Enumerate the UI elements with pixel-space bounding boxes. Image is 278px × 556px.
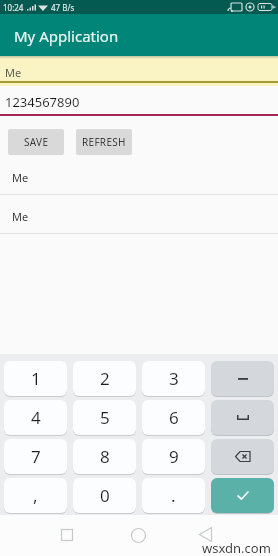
button[interactable]: ,	[4, 478, 67, 513]
staticText: 7	[31, 445, 41, 468]
staticText: wsxdn.com	[202, 539, 271, 556]
staticText: 10:24	[3, 2, 24, 13]
button[interactable]: SAVE	[8, 129, 64, 155]
button[interactable]: REFRESH	[76, 129, 132, 155]
staticText: 9	[169, 445, 179, 468]
staticText: 4	[31, 406, 41, 429]
button[interactable]: .	[142, 478, 205, 513]
staticText: 2	[100, 367, 110, 390]
button[interactable]: 1234567890	[0, 86, 278, 116]
button[interactable]: 3	[142, 361, 205, 396]
button[interactable]	[211, 478, 274, 513]
staticText: 3	[169, 367, 179, 390]
staticText: My Application	[14, 26, 119, 46]
button[interactable]: 4	[4, 400, 67, 435]
button[interactable]: 2	[73, 361, 136, 396]
staticText: Me	[5, 65, 22, 80]
staticText: 8	[100, 445, 110, 468]
button[interactable]	[211, 361, 274, 396]
button[interactable]: 0	[73, 478, 136, 513]
button[interactable]: Me	[0, 195, 278, 233]
button[interactable]: 8	[73, 439, 136, 474]
staticText: 1	[31, 367, 41, 390]
staticText: 0	[100, 484, 110, 507]
button[interactable]: 7	[4, 439, 67, 474]
staticText: SAVE	[24, 135, 49, 149]
button[interactable]	[211, 439, 274, 474]
staticText: .	[171, 484, 176, 507]
staticText: Me	[12, 209, 29, 224]
staticText: Me	[12, 170, 29, 185]
staticText: 47 B/s	[51, 2, 75, 13]
staticText: REFRESH	[82, 135, 126, 149]
button[interactable]: 9	[142, 439, 205, 474]
staticText: ,	[33, 484, 38, 507]
button[interactable]: Me	[0, 156, 278, 194]
button[interactable]: 6	[142, 400, 205, 435]
button[interactable]: 5	[73, 400, 136, 435]
staticText: 5	[100, 406, 110, 429]
button[interactable]: 1	[4, 361, 67, 396]
button[interactable]	[211, 400, 274, 435]
staticText: 6	[169, 406, 179, 429]
staticText: 1234567890	[5, 93, 80, 111]
button[interactable]: Me	[0, 56, 278, 86]
